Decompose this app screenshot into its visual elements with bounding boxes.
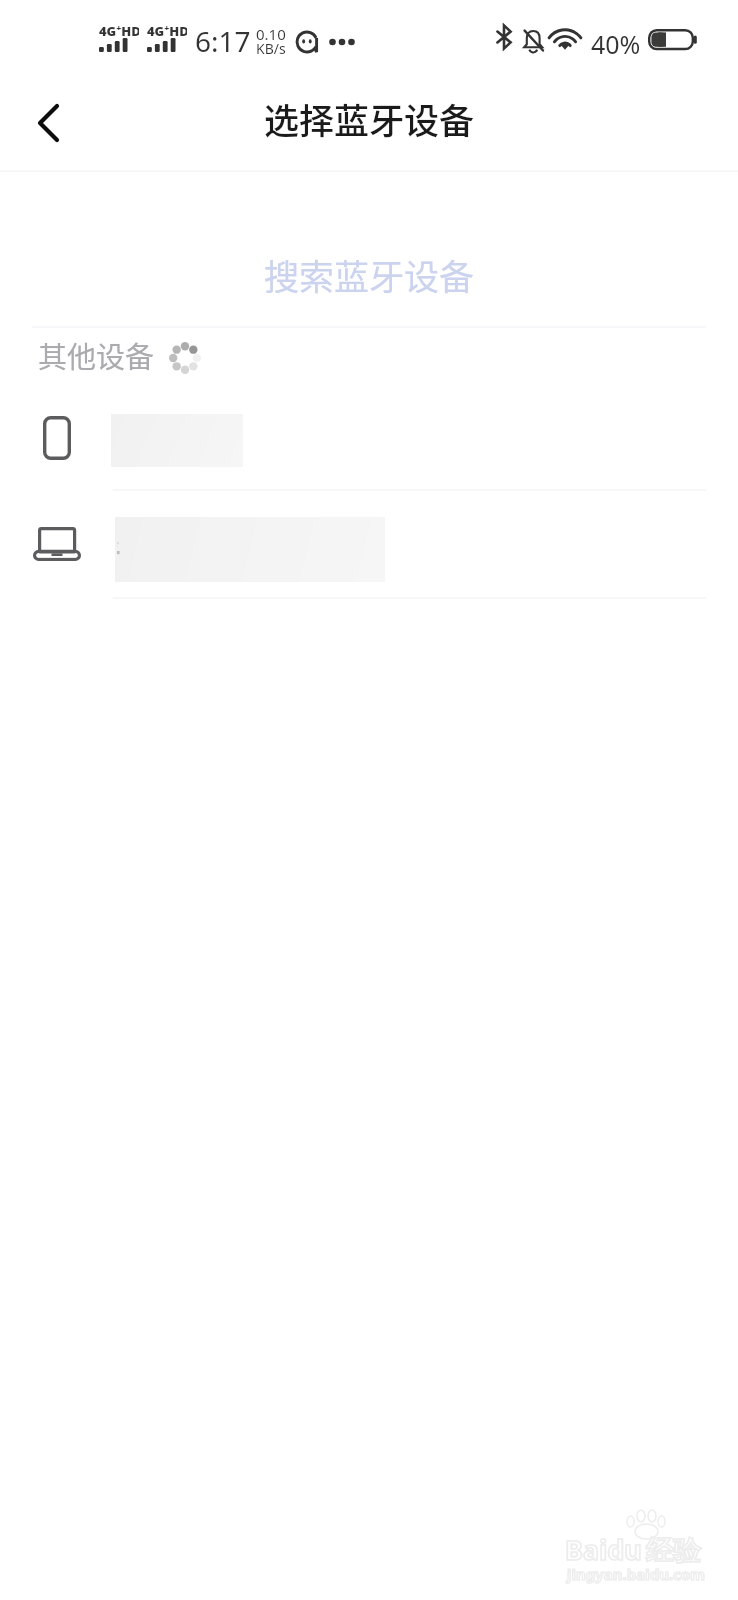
staticText: 搜索蓝牙设备 bbox=[264, 249, 475, 300]
staticText: 40% bbox=[591, 27, 641, 61]
staticText: Baidu 经验 bbox=[565, 1531, 701, 1568]
button[interactable] bbox=[0, 390, 738, 490]
staticText: 0.10 bbox=[256, 24, 286, 44]
staticText: 选择蓝牙设备 bbox=[264, 93, 475, 144]
staticText: KB/s bbox=[256, 39, 286, 58]
staticText: 其他设备 bbox=[38, 334, 155, 376]
staticText: 6:17 bbox=[195, 22, 251, 60]
button[interactable] bbox=[0, 490, 738, 598]
button[interactable]: Back bbox=[4, 84, 94, 162]
staticText: jingyan.baidu.com bbox=[567, 1564, 705, 1584]
staticText: 4G⁺HD bbox=[147, 22, 187, 40]
staticText: 4G⁺HD bbox=[99, 22, 139, 40]
